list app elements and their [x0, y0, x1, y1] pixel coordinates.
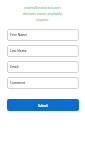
button[interactable]: Submit	[7, 99, 79, 111]
staticText: Comment	[10, 81, 26, 85]
staticText: Submit	[38, 104, 49, 108]
button[interactable]: First Name	[7, 29, 79, 41]
staticText: Email	[10, 65, 19, 69]
button[interactable]: Comment	[7, 77, 79, 89]
button[interactable]: Last Name	[7, 45, 79, 57]
staticText: First Name	[10, 33, 28, 37]
staticText: Last Name	[10, 49, 27, 53]
button[interactable]: Email	[7, 61, 79, 73]
staticText: nashvillecreative.com domain name availa…	[0, 5, 85, 22]
